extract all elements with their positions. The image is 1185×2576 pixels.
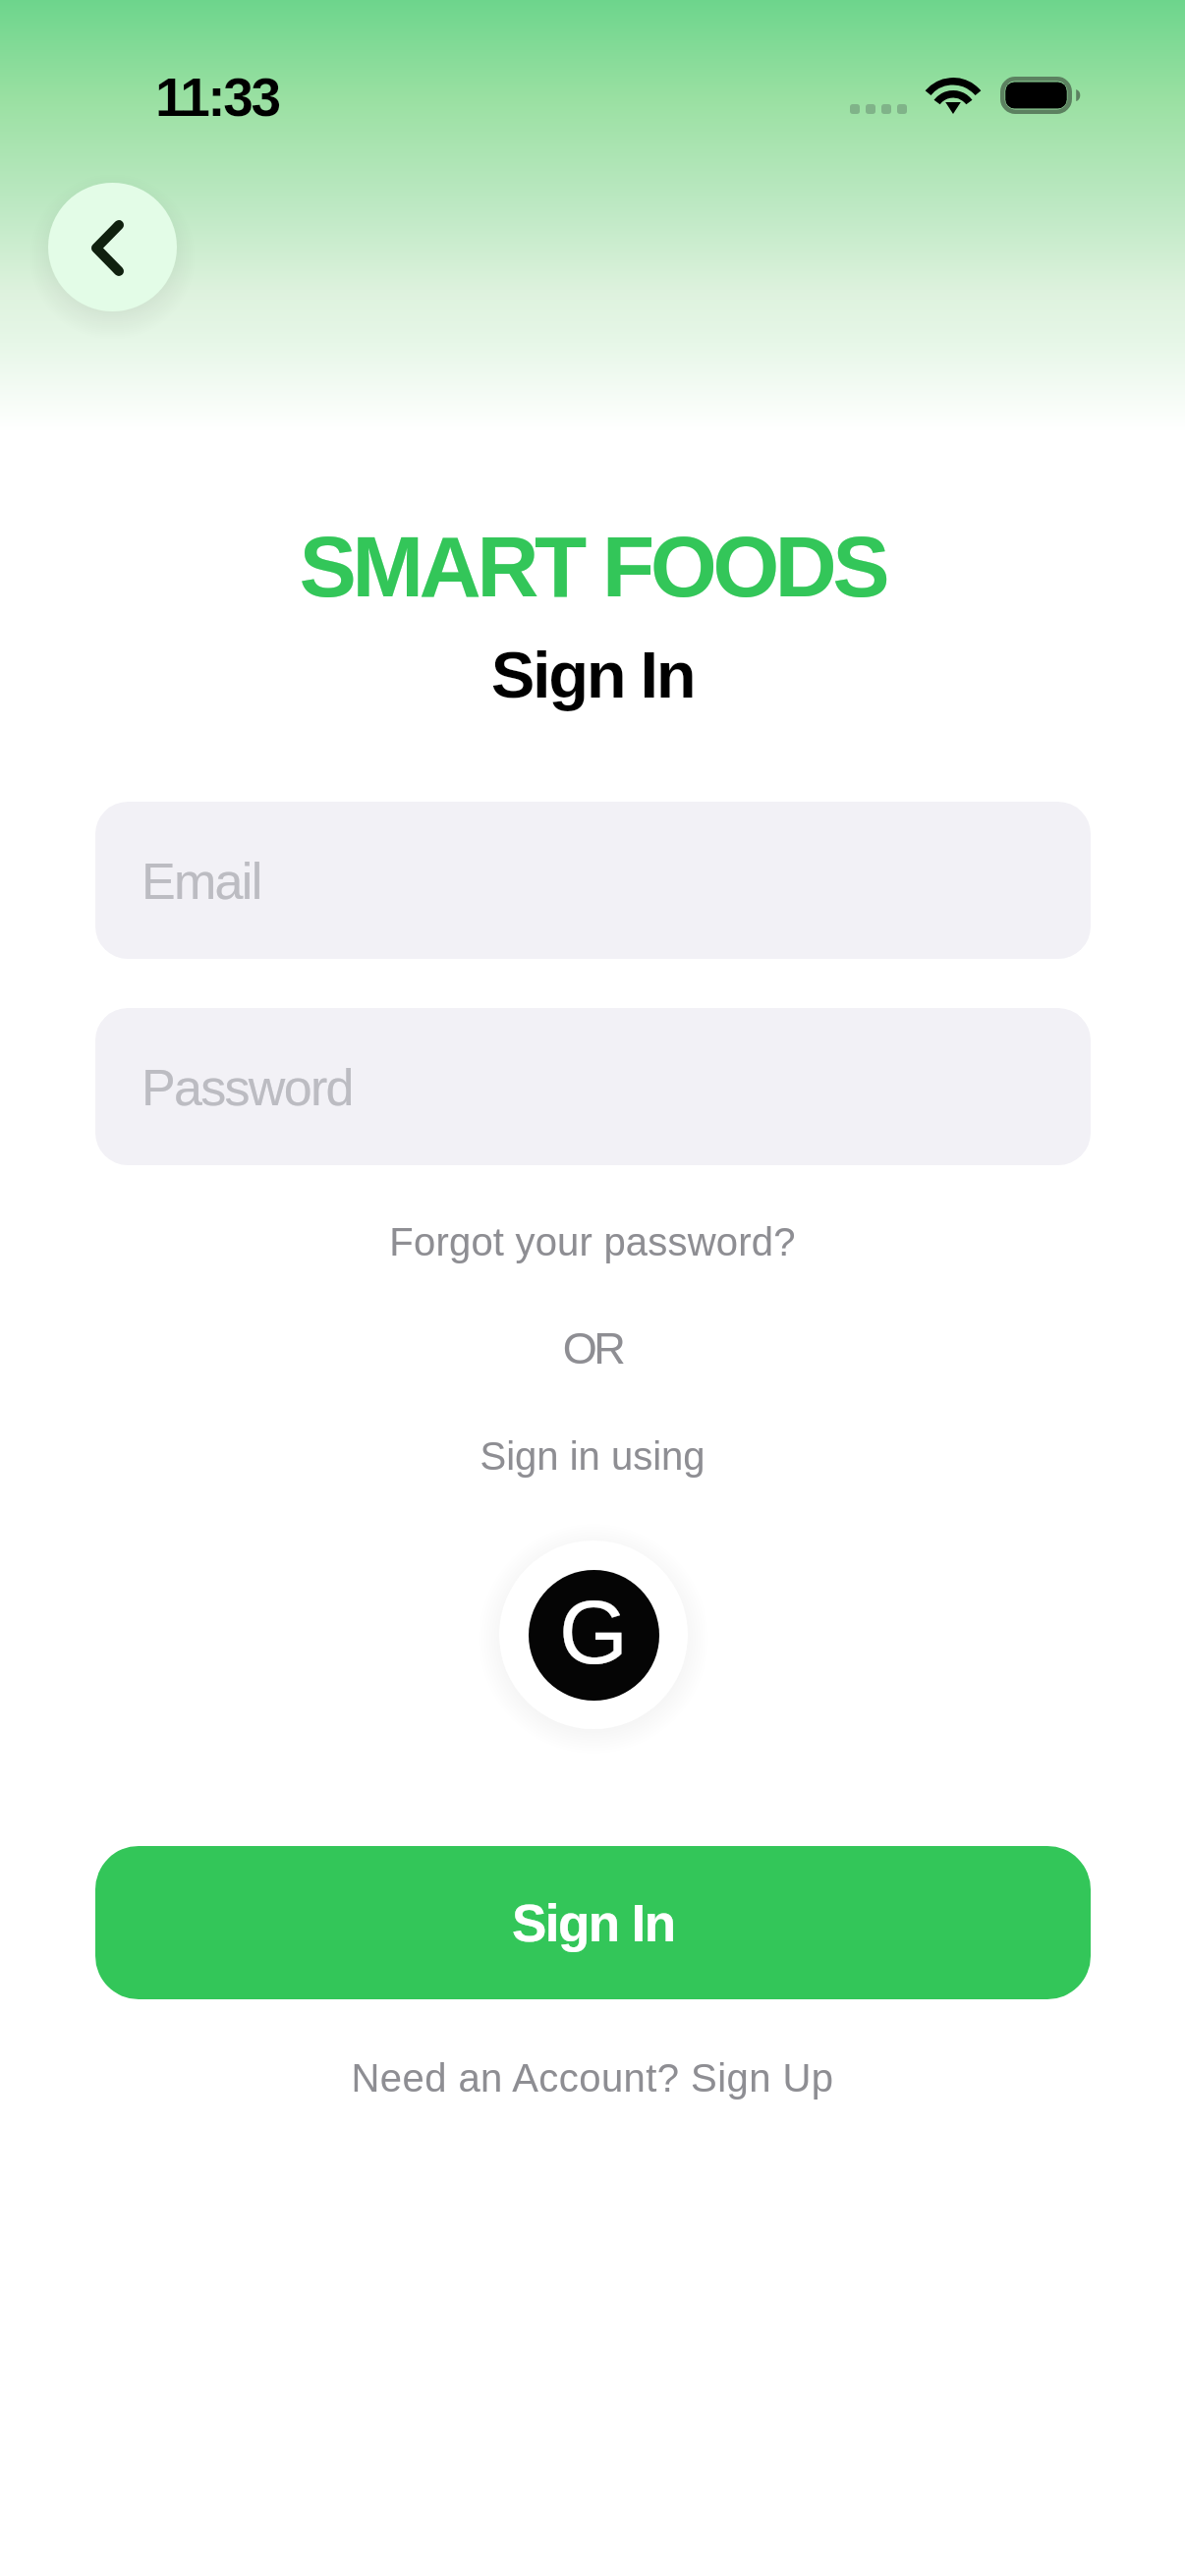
- button[interactable]: Email: [95, 802, 1091, 959]
- button[interactable]: Sign In: [95, 1846, 1091, 1999]
- button[interactable]: Password: [95, 1008, 1091, 1165]
- staticText: OR: [0, 1323, 1185, 1372]
- staticText: Password: [141, 1059, 353, 1116]
- button[interactable]: Back: [48, 183, 177, 311]
- staticText: Email: [141, 853, 261, 910]
- staticText: Sign In: [0, 638, 1185, 711]
- staticText: Sign In: [512, 1894, 675, 1952]
- staticText: 11:33: [155, 67, 279, 127]
- staticText: Forgot your password?: [0, 1220, 1185, 1264]
- button[interactable]: Need an Account? Sign Up: [0, 2056, 1185, 2111]
- staticText: SMART FOODS: [0, 519, 1185, 614]
- staticText: Sign in using: [0, 1434, 1185, 1479]
- button[interactable]: Sign in with Google: [496, 1538, 691, 1732]
- staticText: Need an Account? Sign Up: [0, 2056, 1185, 2100]
- button[interactable]: Forgot your password?: [0, 1220, 1185, 1275]
- staticText: G: [559, 1584, 629, 1683]
